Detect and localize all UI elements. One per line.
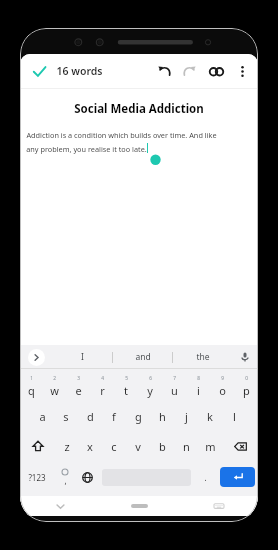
staticText: i [197,383,200,398]
staticText: l [233,409,236,424]
button[interactable]: h [150,401,174,431]
staticText: f [112,409,116,424]
staticText: g [135,409,142,424]
staticText: b [159,439,166,454]
button[interactable]: 5 [114,371,138,401]
staticText: u [171,383,178,398]
button[interactable]: m [198,431,222,461]
button[interactable]: ?123 [20,461,53,493]
staticText: o [219,383,226,398]
staticText: r [100,383,105,398]
staticText: 3 [77,375,80,382]
button[interactable]: Switch keyboard [179,496,258,516]
button[interactable]: s [54,401,78,431]
button[interactable]: 9 [210,371,234,401]
button[interactable]: c [102,431,126,461]
staticText: v [135,439,141,454]
button[interactable]: 4 [90,371,114,401]
button[interactable]: Done [26,58,52,84]
staticText: k [207,409,213,424]
staticText: p [243,383,250,398]
button[interactable]: and [113,345,172,369]
button[interactable]: Change language [76,461,99,493]
button[interactable]: x [78,431,102,461]
button[interactable]: Hide keyboard [20,496,100,516]
staticText: d [87,409,94,424]
button[interactable]: j [174,401,198,431]
staticText: any problem, you realise it too late. [26,144,147,154]
staticText: 8 [197,375,200,382]
button[interactable]: Backspace [222,431,258,461]
button[interactable]: Shift [20,431,55,461]
button[interactable]: 6 [138,371,162,401]
button[interactable]: 8 [186,371,210,401]
button[interactable]: Home [100,496,179,516]
button[interactable]: f [102,401,126,431]
button[interactable]: 0 [234,371,258,401]
button[interactable]: 2 [43,371,66,401]
staticText: h [159,409,166,424]
staticText: c [111,439,117,454]
button[interactable]: Focus mode [203,58,229,84]
staticText: , [64,475,67,486]
button[interactable]: More options [229,58,255,84]
staticText: q [28,383,35,398]
staticText: s [63,409,69,424]
staticText: the [196,351,210,363]
staticText: w [50,383,59,398]
button[interactable]: v [126,431,150,461]
staticText: t [124,383,128,398]
staticText: Social Media Addiction [74,101,204,117]
staticText: 7 [173,375,176,382]
button[interactable]: Undo [151,58,177,84]
staticText: 4 [101,375,104,382]
staticText: 5 [125,375,128,382]
button[interactable]: a [31,401,54,431]
button[interactable]: I [52,345,112,369]
staticText: . [204,472,207,483]
staticText: a [39,409,46,424]
staticText: z [64,439,70,454]
staticText: I [81,351,84,363]
staticText: n [183,439,190,454]
staticText: e [75,383,82,398]
button[interactable]: . [194,461,217,493]
button[interactable]: Voice input [232,345,258,369]
button[interactable]: b [150,431,174,461]
button[interactable]: k [198,401,222,431]
button[interactable]: l [222,401,246,431]
button[interactable]: d [78,401,102,431]
staticText: 2 [53,375,56,382]
staticText: Addiction is a condition which builds ov… [26,130,217,140]
staticText: y [147,383,153,398]
staticText: 16 words [56,64,103,78]
button[interactable]: the [173,345,232,369]
staticText: m [205,439,216,454]
button[interactable]: 3 [66,371,90,401]
staticText: x [87,439,93,454]
button[interactable]: Emoji and comma [53,461,76,493]
button[interactable]: n [174,431,198,461]
button[interactable]: Expand toolbar [20,345,52,369]
button[interactable]: 1 [20,371,43,401]
button[interactable]: Enter [220,467,255,487]
staticText: 1 [30,375,33,382]
button[interactable]: z [55,431,78,461]
staticText: 0 [245,375,248,382]
staticText: 9 [221,375,224,382]
staticText: and [135,351,151,363]
staticText: j [185,409,188,424]
button[interactable]: Redo [177,58,203,84]
button[interactable]: 7 [162,371,186,401]
staticText: ?123 [28,472,46,483]
button[interactable]: g [126,401,150,431]
staticText: 6 [149,375,152,382]
